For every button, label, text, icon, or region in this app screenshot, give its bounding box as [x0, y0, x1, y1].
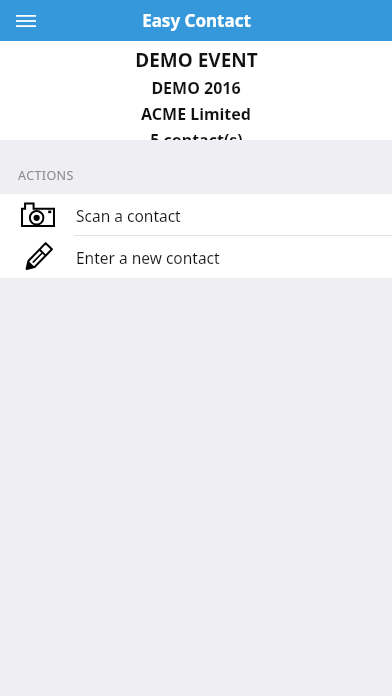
button[interactable]: Open navigation menu	[8, 3, 44, 39]
button[interactable]: Edit	[0, 236, 392, 278]
staticText: Scan a contact	[76, 205, 181, 226]
staticText: ACTIONS	[18, 167, 74, 184]
other: Camera	[21, 202, 55, 228]
staticText: Easy Contact	[142, 9, 251, 32]
button[interactable]: Camera	[0, 194, 392, 236]
other: Edit	[23, 242, 53, 272]
staticText: ACME Limited	[141, 103, 251, 125]
staticText: 5 contact(s)	[150, 129, 243, 140]
staticText: DEMO 2016	[151, 77, 241, 99]
staticText: DEMO EVENT	[135, 47, 258, 73]
staticText: Enter a new contact	[76, 247, 220, 268]
